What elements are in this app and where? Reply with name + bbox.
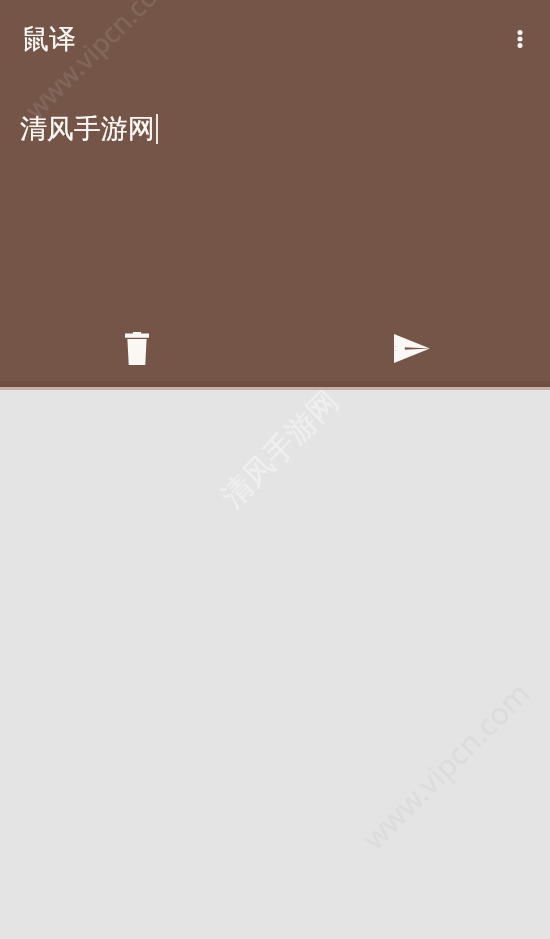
staticText: 清风手游网 (20, 112, 155, 146)
button[interactable]: More options (496, 15, 544, 63)
staticText: 清风手游网 (213, 382, 346, 515)
button[interactable]: Clear (89, 312, 185, 384)
button[interactable]: 清风手游网 (0, 78, 550, 308)
staticText: 鼠译 (22, 22, 76, 56)
button[interactable]: Send (364, 312, 460, 384)
staticText: www.vipcn.com (16, 0, 183, 127)
